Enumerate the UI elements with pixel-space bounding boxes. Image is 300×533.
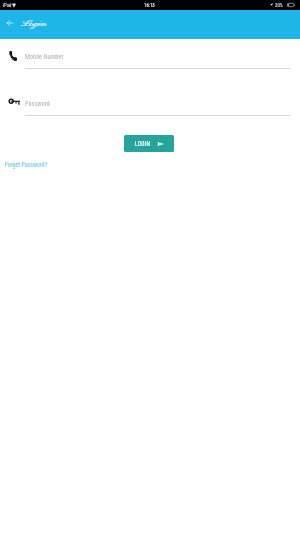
- staticText: Login: [21, 18, 47, 30]
- staticText: iPad: [3, 2, 12, 8]
- button[interactable]: Password: [0, 94, 300, 118]
- button[interactable]: LOGIN: [124, 135, 174, 152]
- staticText: 20%: [275, 2, 283, 8]
- staticText: Forget Password?: [5, 161, 47, 169]
- button[interactable]: Forget Password?: [0, 159, 61, 171]
- button[interactable]: Back: [3, 16, 17, 30]
- staticText: LOGIN: [135, 140, 150, 148]
- staticText: 16:13: [144, 2, 155, 8]
- button[interactable]: Mobile Number: [0, 47, 300, 71]
- staticText: Mobile Number: [25, 52, 64, 61]
- staticText: Password: [25, 99, 50, 108]
